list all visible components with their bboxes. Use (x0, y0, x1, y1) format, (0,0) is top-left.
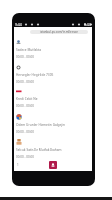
staticText: Kredi Cebit Ne (16, 97, 38, 101)
staticText: 00:00 - 00:00 (16, 55, 34, 59)
staticText: Sadece Mutfakta (16, 48, 41, 52)
staticText: 00:00 - 00:00 (16, 130, 34, 134)
staticText: 9:44 (15, 22, 22, 27)
staticText: 1 (17, 163, 19, 167)
staticText: Hersegler Hegirlide 7305 (16, 73, 54, 77)
staticText: 00:00 - 00:00 (16, 80, 34, 84)
staticText: Selcuk Satis Ile Mutfak Ikaham (16, 148, 62, 152)
button[interactable]: Kredi Cebit Ne (16, 89, 89, 112)
button[interactable]: Hersegler Hegirlide 7305 (16, 65, 89, 88)
staticText: Odem Urunler Hizmetin Galgejin (16, 123, 65, 127)
staticText: 00:00 - 00:00 (16, 104, 34, 108)
button[interactable]: Odem Urunler Hizmetin Galgejin (16, 114, 89, 137)
button[interactable]: Sadece Mutfakta (16, 40, 89, 63)
staticText: 00:00 - 00:00 (16, 155, 34, 159)
staticText: istanbul-ps.com/tr-mller.soe (40, 30, 78, 34)
button[interactable]: Selcuk Satis Ile Mutfak Ikaham (16, 139, 89, 162)
button[interactable]: Add (49, 161, 57, 169)
staticText: 9:44 (84, 22, 91, 27)
button[interactable]: istanbul-ps.com/tr-mller.soe (30, 30, 88, 34)
